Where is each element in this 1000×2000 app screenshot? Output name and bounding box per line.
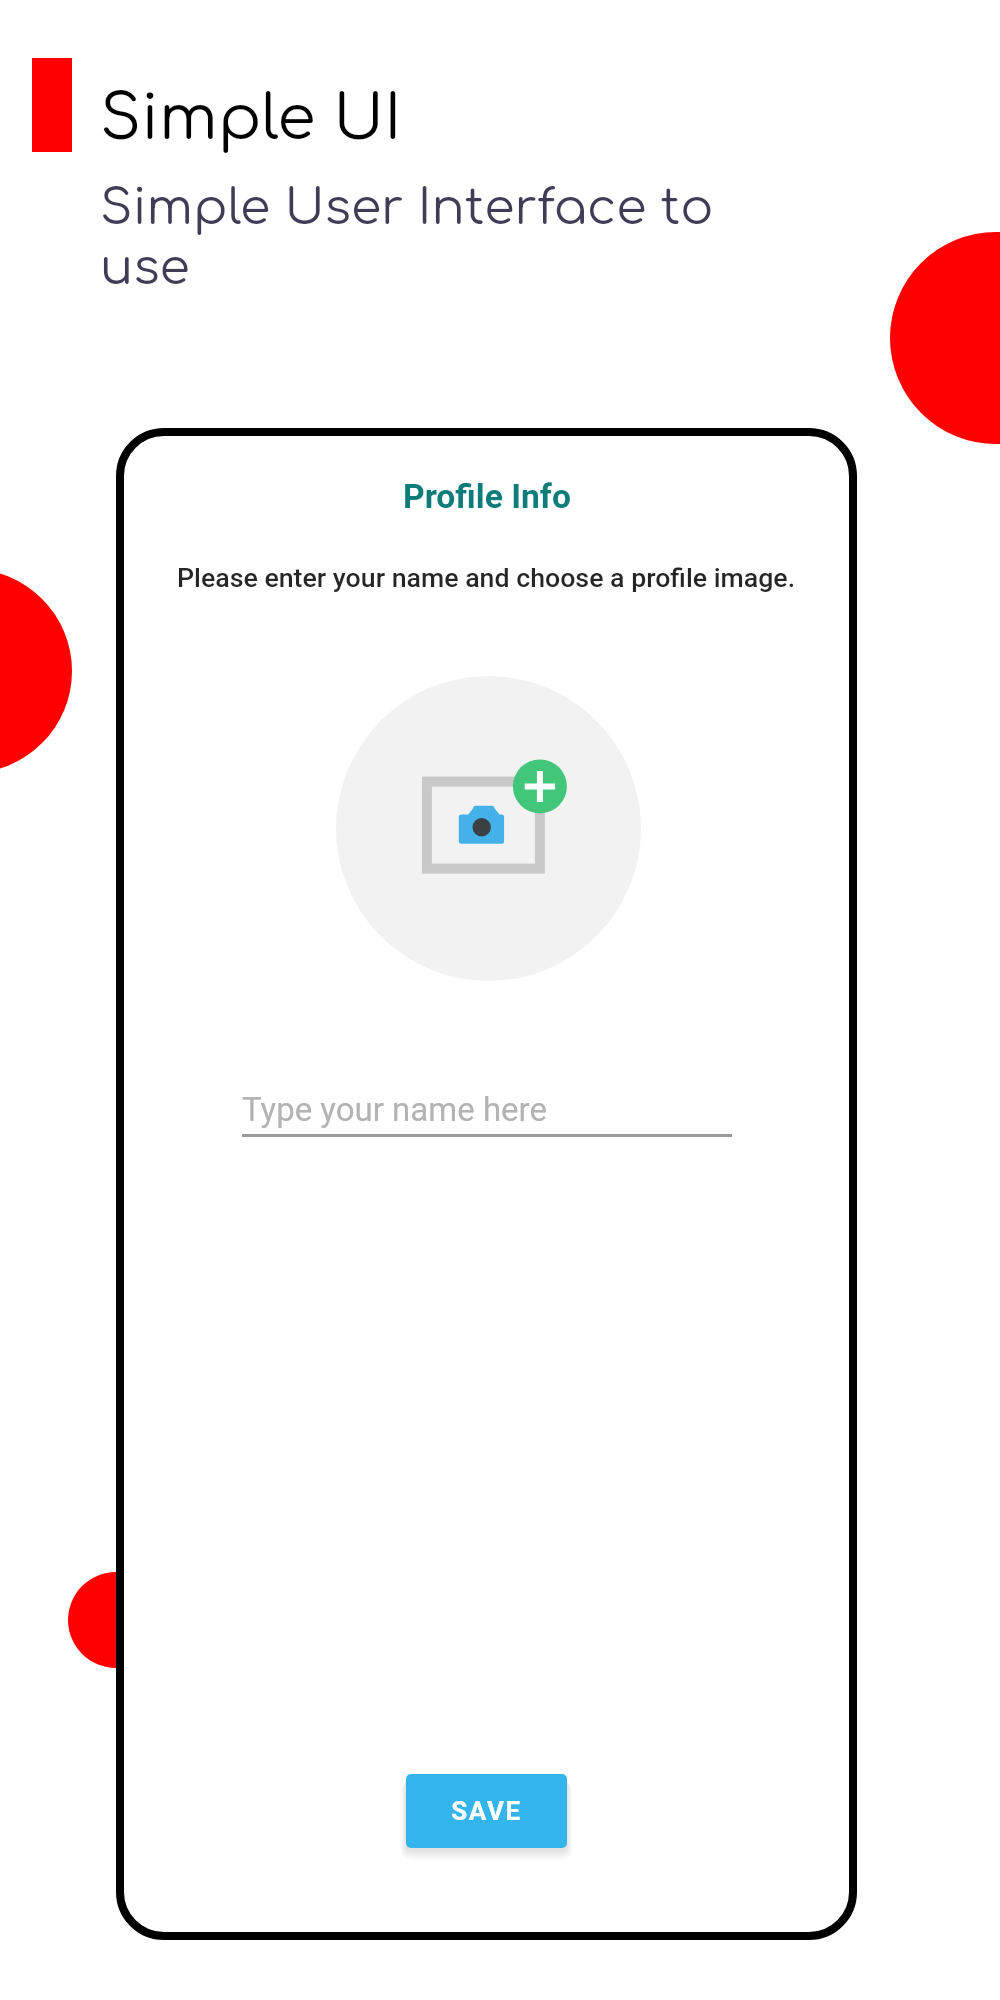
staticText: Type your name here xyxy=(242,1090,547,1129)
staticText: Profile Info xyxy=(403,477,571,516)
button[interactable]: Type your name here xyxy=(242,1090,732,1137)
staticText: Simple UI xyxy=(100,84,402,153)
button[interactable]: SAVE xyxy=(406,1774,567,1848)
staticText: Simple User Interface to use xyxy=(100,181,725,295)
staticText: Please enter your name and choose a prof… xyxy=(177,562,796,593)
button[interactable]: Choose profile image xyxy=(336,676,641,981)
staticText: SAVE xyxy=(451,1796,522,1826)
